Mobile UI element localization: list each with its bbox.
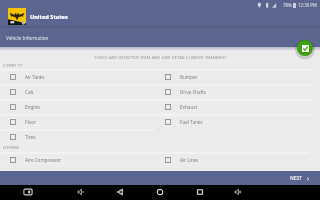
staticText: OTHERS: [3, 145, 19, 151]
button[interactable]: Vehicle Information: [0, 29, 320, 46]
button[interactable]: Engine: [0, 99, 155, 114]
button[interactable]: Recents: [194, 188, 206, 196]
button[interactable]: Floor: [0, 114, 155, 129]
staticText: Drive Shafts: [180, 89, 206, 95]
button[interactable]: Air Lines: [155, 152, 310, 167]
button[interactable]: Drive Shafts: [155, 84, 310, 99]
staticText: Aire Compressor: [25, 157, 61, 163]
staticText: C-TRKT 17: [3, 63, 23, 69]
button[interactable]: NEXT: [0, 171, 320, 185]
staticText: 12:39 PM: [298, 2, 318, 8]
staticText: Fuel Tanks: [180, 119, 203, 125]
button[interactable]: Home: [154, 188, 166, 196]
button[interactable]: Cab: [0, 84, 155, 99]
staticText: CHECK ANY DEFECTIVE ITEM AND GIVE DETAIL…: [94, 55, 227, 61]
staticText: Air Tanks: [25, 74, 45, 80]
button[interactable]: Aire Compressor: [0, 152, 155, 167]
button[interactable]: Tires: [0, 129, 155, 144]
button[interactable]: Volume up: [232, 188, 244, 196]
staticText: Bumper: [180, 74, 198, 80]
button[interactable]: Back: [114, 188, 126, 196]
staticText: Vehicle Information: [6, 35, 49, 41]
button[interactable]: Exhaust: [155, 99, 310, 114]
staticText: Exhaust: [180, 104, 198, 110]
button[interactable]: Air Tanks: [0, 69, 155, 84]
staticText: Air Lines: [180, 157, 199, 163]
staticText: Floor: [25, 119, 37, 125]
staticText: Tires: [25, 134, 36, 140]
button[interactable]: Screenshot: [22, 188, 34, 196]
button[interactable]: Fuel Tanks: [155, 114, 310, 129]
staticText: United States: [30, 13, 68, 21]
staticText: Engine: [25, 104, 40, 110]
button[interactable]: Confirm: [297, 40, 313, 56]
staticText: 78%: [283, 2, 292, 8]
staticText: NEXT: [290, 175, 303, 182]
button[interactable]: Volume down: [75, 188, 87, 196]
staticText: Cab: [25, 89, 34, 95]
button[interactable]: Bumper: [155, 69, 310, 84]
